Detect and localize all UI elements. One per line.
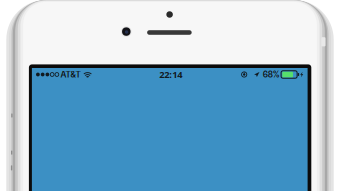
staticText: AT&T — [60, 69, 80, 80]
staticText: 68% — [263, 69, 280, 80]
staticText: 22:14 — [159, 68, 182, 81]
